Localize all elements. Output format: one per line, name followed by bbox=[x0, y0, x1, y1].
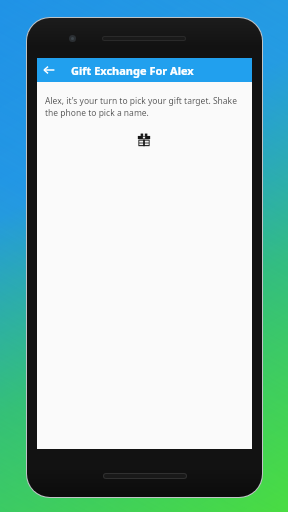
staticText: Gift Exchange For Alex bbox=[71, 63, 194, 78]
staticText: Alex, it's your turn to pick your gift t… bbox=[45, 95, 244, 119]
button[interactable]: Navigate up bbox=[37, 58, 61, 82]
button[interactable]: Shake to pick a gift target bbox=[137, 133, 151, 147]
